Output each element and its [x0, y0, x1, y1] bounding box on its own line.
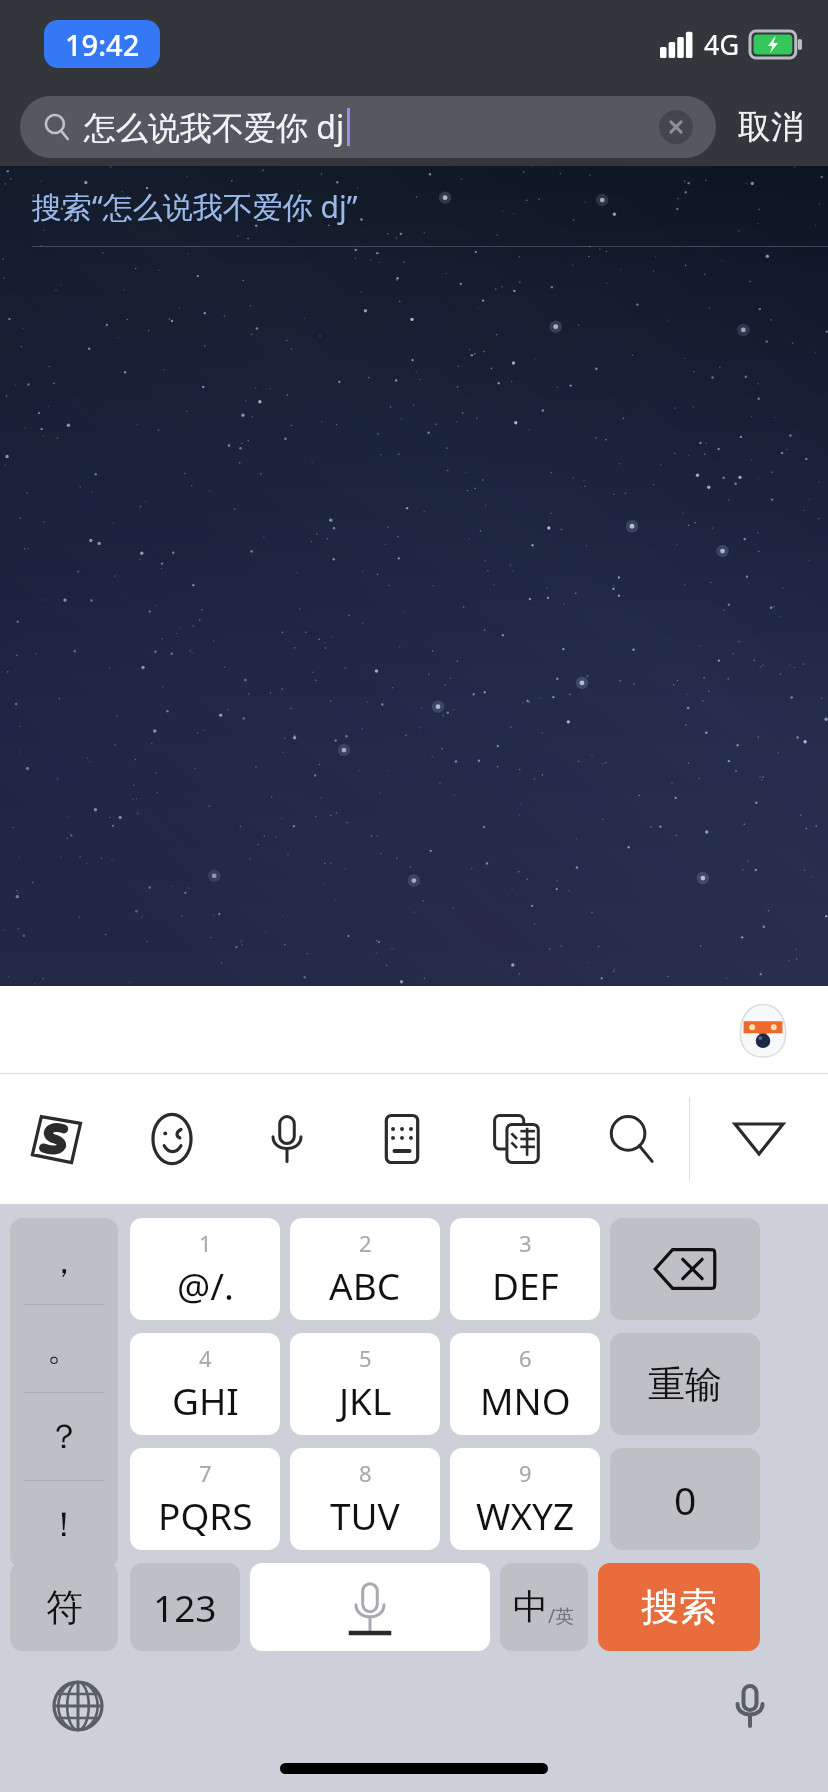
button[interactable]: Voice input: [710, 1666, 790, 1746]
staticText: 0: [674, 1473, 697, 1526]
button[interactable]: Search: [574, 1074, 689, 1204]
staticText: MNO: [480, 1375, 571, 1425]
staticText: 重输: [648, 1361, 722, 1408]
button[interactable]: Sogou assistant: [736, 1003, 790, 1057]
button[interactable]: 搜索: [598, 1563, 760, 1651]
staticText: 取消: [738, 106, 804, 148]
staticText: 9: [519, 1458, 532, 1488]
button[interactable]: 搜索“怎么说我不爱你 dj”: [0, 166, 828, 246]
button[interactable]: 1: [130, 1218, 280, 1320]
staticText: 3: [519, 1228, 532, 1258]
staticText: WXYZ: [476, 1490, 575, 1540]
staticText: PQRS: [158, 1490, 253, 1540]
button[interactable]: 中: [500, 1563, 588, 1651]
staticText: JKL: [339, 1375, 392, 1425]
button[interactable]: Voice input: [229, 1074, 344, 1204]
staticText: DEF: [492, 1260, 559, 1310]
button[interactable]: 4: [130, 1333, 280, 1435]
button[interactable]: 。: [10, 1305, 118, 1392]
button[interactable]: Hide keyboard: [690, 1074, 828, 1204]
staticText: ，: [47, 1240, 81, 1283]
button[interactable]: 123: [130, 1563, 240, 1651]
staticText: 8: [359, 1458, 372, 1488]
staticText: 4: [199, 1343, 212, 1373]
button[interactable]: 7: [130, 1448, 280, 1550]
button[interactable]: 怎么说我不爱你 dj: [20, 96, 716, 158]
staticText: @/.: [177, 1260, 234, 1310]
staticText: 怎么说我不爱你 dj: [84, 105, 345, 149]
button[interactable]: Translate: [459, 1074, 574, 1204]
button[interactable]: 6: [450, 1333, 600, 1435]
staticText: 。: [47, 1327, 81, 1370]
staticText: 19:42: [65, 25, 140, 64]
button[interactable]: 9: [450, 1448, 600, 1550]
staticText: 2: [359, 1228, 372, 1258]
button[interactable]: ？: [10, 1393, 118, 1480]
button[interactable]: Clear text: [658, 109, 694, 145]
button[interactable]: Space, voice input: [250, 1563, 490, 1651]
button[interactable]: Keyboard layout: [344, 1074, 459, 1204]
staticText: 1: [199, 1228, 212, 1258]
staticText: 7: [199, 1458, 212, 1488]
button[interactable]: Change language: [38, 1666, 118, 1746]
staticText: 123: [153, 1582, 217, 1632]
button[interactable]: ！: [10, 1481, 118, 1568]
button[interactable]: 0: [610, 1448, 760, 1550]
staticText: 4G: [704, 26, 740, 63]
button[interactable]: Emoji: [114, 1074, 229, 1204]
staticText: ABC: [329, 1260, 401, 1310]
staticText: ？: [47, 1415, 81, 1458]
button[interactable]: 8: [290, 1448, 440, 1550]
button[interactable]: 3: [450, 1218, 600, 1320]
button[interactable]: 符: [10, 1563, 118, 1651]
button[interactable]: Sogou keyboard settings: [0, 1074, 114, 1204]
button[interactable]: 2: [290, 1218, 440, 1320]
staticText: 中: [513, 1585, 548, 1629]
button[interactable]: ，: [10, 1218, 118, 1304]
staticText: 符: [46, 1584, 83, 1631]
staticText: TUV: [330, 1490, 400, 1540]
staticText: 搜索“怎么说我不爱你 dj”: [32, 186, 358, 227]
button[interactable]: 取消: [734, 98, 808, 156]
staticText: GHI: [172, 1375, 239, 1425]
button[interactable]: 5: [290, 1333, 440, 1435]
button[interactable]: Backspace: [610, 1218, 760, 1320]
staticText: /英: [548, 1603, 575, 1629]
staticText: 6: [519, 1343, 532, 1373]
button[interactable]: 重输: [610, 1333, 760, 1435]
staticText: 5: [359, 1343, 372, 1373]
staticText: ！: [47, 1503, 81, 1546]
staticText: 搜索: [641, 1583, 717, 1631]
